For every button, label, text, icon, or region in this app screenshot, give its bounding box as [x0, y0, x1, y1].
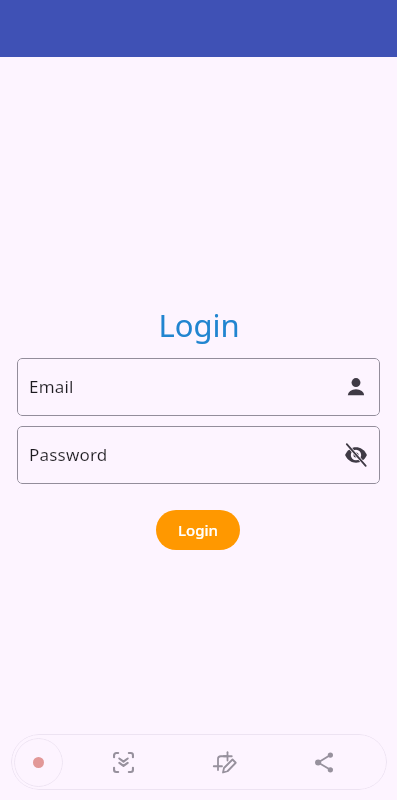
- button[interactable]: Email: [17, 358, 380, 416]
- other: Toggle password visibility: [344, 443, 368, 467]
- button[interactable]: Password: [17, 426, 380, 484]
- staticText: Login: [158, 304, 240, 346]
- staticText: Login: [178, 520, 218, 540]
- button[interactable]: Scan: [99, 738, 147, 786]
- button[interactable]: Record: [14, 738, 63, 787]
- button[interactable]: Login: [156, 510, 240, 550]
- button[interactable]: Share: [299, 738, 347, 786]
- button[interactable]: Crop and edit: [200, 738, 248, 786]
- other: Person: [344, 375, 368, 399]
- staticText: Password: [29, 443, 108, 466]
- staticText: Email: [29, 375, 74, 398]
